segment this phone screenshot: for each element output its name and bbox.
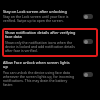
button[interactable]: Stay on Lock screen after unlocking xyxy=(83,14,93,19)
staticText: Show notification details after verifyin… xyxy=(5,30,77,39)
button[interactable] xyxy=(0,60,100,88)
staticText: Stay on Lock screen after unlocking xyxy=(3,9,67,14)
button[interactable] xyxy=(2,28,98,57)
button[interactable]: Allow Face unlock when screen lights up xyxy=(83,72,93,77)
button[interactable]: Show notification details after verifyin… xyxy=(83,39,93,44)
staticText: Allow Face unlock when screen lights up xyxy=(3,60,75,69)
staticText: Show only the notification icons when th… xyxy=(5,40,77,53)
button[interactable] xyxy=(0,8,100,28)
staticText: Stay on the Lock screen until your face … xyxy=(3,14,75,23)
staticText: You can unlock the device using face dat… xyxy=(3,70,75,87)
